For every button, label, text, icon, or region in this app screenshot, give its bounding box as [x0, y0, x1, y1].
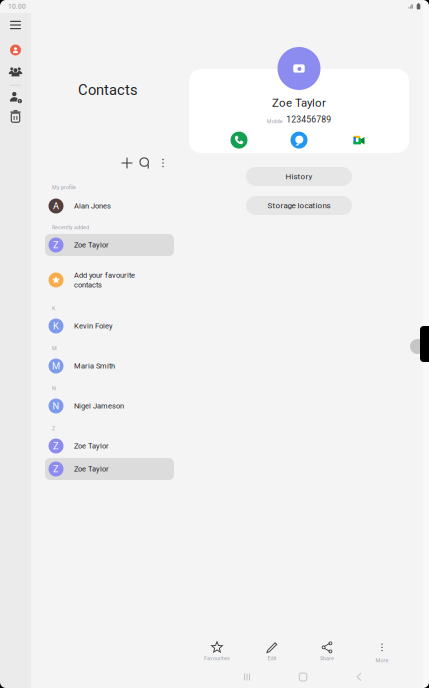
button[interactable]: Menu	[6, 16, 24, 34]
button[interactable]: More options	[154, 154, 172, 172]
button[interactable]: More	[354, 637, 409, 665]
button[interactable]: M	[45, 355, 174, 377]
staticText: Z	[53, 440, 59, 451]
staticText: Alan Jones	[74, 202, 111, 210]
staticText: Mobile	[267, 118, 283, 124]
staticText: A	[53, 200, 59, 211]
staticText: Nigel Jameson	[74, 402, 124, 410]
button[interactable]: Add your favourite	[45, 265, 174, 295]
staticText: 123456789	[286, 114, 331, 125]
staticText: K	[52, 305, 55, 312]
staticText: Contacts	[78, 81, 138, 99]
button[interactable]: Search	[136, 154, 154, 172]
staticText: Z	[53, 463, 59, 474]
button[interactable]: Call	[230, 132, 247, 149]
button[interactable]: Z	[45, 435, 174, 457]
staticText: My profile	[52, 184, 76, 191]
button[interactable]: Z	[45, 234, 174, 256]
button[interactable]: Add contact	[118, 154, 136, 172]
button[interactable]: Favourites	[189, 637, 244, 665]
button[interactable]: Video call	[350, 132, 367, 149]
staticText: More	[375, 657, 388, 664]
staticText: M	[52, 345, 57, 352]
button[interactable]: Manage contacts	[6, 88, 24, 106]
staticText: Storage locations	[267, 201, 330, 210]
staticText: Zoe Taylor	[74, 442, 109, 450]
button[interactable]: Z	[45, 458, 174, 480]
staticText: Zoe Taylor	[74, 465, 109, 473]
button[interactable]: N	[45, 395, 174, 417]
staticText: N	[52, 385, 56, 392]
staticText: Favourites	[204, 655, 230, 662]
staticText: Maria Smith	[74, 362, 115, 370]
button[interactable]: Storage locations	[246, 196, 352, 215]
button[interactable]: Home	[296, 671, 310, 683]
staticText: Kevin Foley	[74, 322, 113, 330]
staticText: Zoe Taylor	[74, 241, 109, 249]
button[interactable]: Contacts	[6, 41, 24, 59]
button[interactable]: History	[246, 167, 352, 186]
staticText: M	[52, 360, 60, 371]
staticText: contacts	[74, 280, 102, 289]
staticText: K	[53, 320, 59, 331]
button[interactable]: Message	[290, 132, 307, 149]
button[interactable]: K	[45, 315, 174, 337]
staticText: Zoe Taylor	[272, 96, 326, 109]
button[interactable]: Share	[299, 637, 354, 665]
staticText: Edit	[267, 655, 276, 662]
staticText: Share	[320, 655, 334, 662]
staticText: Z	[52, 425, 55, 432]
staticText: Add your favourite	[74, 271, 135, 279]
button[interactable]: Trash	[6, 108, 24, 126]
button[interactable]: Groups	[6, 63, 24, 81]
button[interactable]: Recent apps	[240, 671, 254, 683]
staticText: Z	[53, 239, 59, 250]
button[interactable]: Back	[352, 671, 366, 683]
button[interactable]: A	[45, 195, 174, 217]
staticText: 10.00	[8, 3, 26, 10]
button[interactable]: Edit	[244, 637, 299, 665]
staticText: History	[285, 172, 312, 181]
button[interactable]: Edge panel	[420, 326, 429, 362]
staticText: Recently added	[52, 224, 89, 231]
staticText: N	[52, 400, 59, 411]
